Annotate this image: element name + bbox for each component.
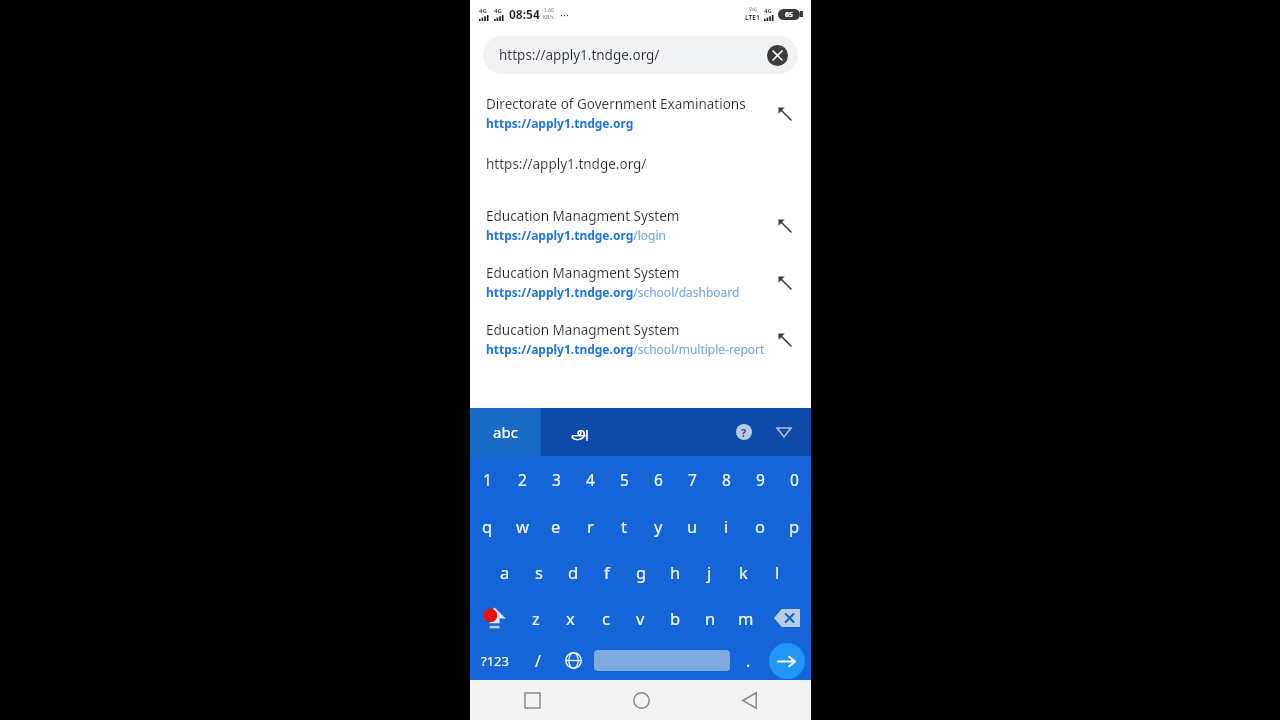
- staticText: 65: [785, 10, 794, 20]
- staticText: v: [636, 607, 645, 629]
- button[interactable]: w: [505, 503, 539, 549]
- staticText: 7: [688, 469, 697, 490]
- button[interactable]: Help: [729, 417, 759, 447]
- button[interactable]: z: [518, 594, 553, 641]
- button[interactable]: Education Managment System: [470, 198, 811, 252]
- button[interactable]: 1: [470, 456, 505, 503]
- staticText: m: [738, 607, 754, 629]
- button[interactable]: Clear: [767, 45, 788, 66]
- staticText: LTE1: [745, 13, 760, 22]
- button[interactable]: Back: [729, 680, 769, 720]
- staticText: n: [705, 607, 716, 629]
- button[interactable]: s: [522, 549, 556, 594]
- button[interactable]: abc: [470, 408, 541, 456]
- button[interactable]: https://apply1.tndge.org/: [470, 140, 811, 188]
- staticText: Vo): [749, 6, 757, 13]
- staticText: 4: [586, 469, 595, 490]
- button[interactable]: Backspace: [763, 594, 811, 641]
- button[interactable]: 4: [573, 456, 607, 503]
- button[interactable]: Edit suggestion: [767, 208, 801, 242]
- button[interactable]: v: [623, 594, 658, 641]
- staticText: abc: [493, 422, 518, 442]
- button[interactable]: 2: [505, 456, 539, 503]
- staticText: ···: [560, 7, 569, 22]
- button[interactable]: a: [487, 549, 522, 594]
- button[interactable]: Hide keyboard: [769, 417, 799, 447]
- staticText: 8: [722, 469, 731, 490]
- button[interactable]: Space: [594, 650, 730, 671]
- staticText: Education Managment System: [486, 264, 680, 282]
- button[interactable]: c: [588, 594, 623, 641]
- button[interactable]: Edit suggestion: [767, 322, 801, 356]
- button[interactable]: f: [590, 549, 624, 594]
- button[interactable]: 8: [709, 456, 743, 503]
- button[interactable]: y: [641, 503, 675, 549]
- staticText: https://apply1.tndge.org: [486, 115, 634, 131]
- button[interactable]: https://apply1.tndge.org/: [483, 36, 798, 74]
- button[interactable]: 6: [641, 456, 675, 503]
- button[interactable]: x: [553, 594, 588, 641]
- button[interactable]: u: [675, 503, 709, 549]
- staticText: t: [621, 515, 627, 537]
- staticText: r: [587, 515, 594, 537]
- button[interactable]: ?123: [470, 641, 520, 680]
- button[interactable]: n: [693, 594, 728, 641]
- button[interactable]: Edit suggestion: [767, 265, 801, 299]
- staticText: w: [516, 515, 529, 537]
- staticText: e: [551, 515, 561, 537]
- staticText: q: [482, 515, 493, 537]
- staticText: g: [636, 561, 647, 583]
- button[interactable]: 3: [539, 456, 573, 503]
- staticText: Directorate of Government Examinations: [486, 95, 746, 113]
- staticText: https://apply1.tndge.org/school/dashboar…: [486, 284, 740, 300]
- button[interactable]: d: [556, 549, 590, 594]
- staticText: 4G: [479, 7, 487, 15]
- button[interactable]: i: [709, 503, 743, 549]
- button[interactable]: Education Managment System: [470, 312, 811, 366]
- button[interactable]: 5: [607, 456, 641, 503]
- staticText: 4G: [764, 7, 772, 15]
- button[interactable]: Recent apps: [512, 680, 552, 720]
- button[interactable]: q: [470, 503, 505, 549]
- button[interactable]: k: [726, 549, 760, 594]
- button[interactable]: Go: [769, 643, 805, 679]
- staticText: 4G: [494, 7, 502, 15]
- staticText: Education Managment System: [486, 321, 680, 339]
- button[interactable]: 7: [675, 456, 709, 503]
- staticText: l: [775, 561, 780, 583]
- button[interactable]: அ: [541, 408, 616, 456]
- staticText: /: [535, 650, 541, 672]
- button[interactable]: Shift: [470, 594, 518, 641]
- button[interactable]: j: [692, 549, 726, 594]
- button[interactable]: m: [728, 594, 763, 641]
- staticText: https://apply1.tndge.org/login: [486, 227, 666, 243]
- button[interactable]: p: [777, 503, 811, 549]
- staticText: y: [654, 515, 663, 537]
- button[interactable]: h: [658, 549, 692, 594]
- button[interactable]: g: [624, 549, 658, 594]
- button[interactable]: .: [733, 641, 763, 680]
- staticText: ?: [741, 425, 747, 440]
- button[interactable]: e: [539, 503, 573, 549]
- button[interactable]: Edit suggestion: [767, 96, 801, 130]
- staticText: Education Managment System: [486, 207, 680, 225]
- button[interactable]: b: [658, 594, 693, 641]
- button[interactable]: r: [573, 503, 607, 549]
- staticText: k: [739, 561, 748, 583]
- staticText: 0: [790, 469, 799, 490]
- button[interactable]: Education Managment System: [470, 255, 811, 309]
- button[interactable]: o: [743, 503, 777, 549]
- button[interactable]: /: [520, 641, 555, 680]
- button[interactable]: Change language: [555, 641, 591, 680]
- button[interactable]: 0: [777, 456, 811, 503]
- button[interactable]: t: [607, 503, 641, 549]
- button[interactable]: l: [760, 549, 794, 594]
- staticText: https://apply1.tndge.org/school/multiple…: [486, 341, 765, 357]
- staticText: KB/s: [543, 14, 554, 21]
- button[interactable]: Directorate of Government Examinations: [470, 86, 811, 140]
- button[interactable]: Home: [621, 680, 661, 720]
- staticText: f: [604, 561, 610, 583]
- staticText: x: [566, 607, 575, 629]
- button[interactable]: 9: [743, 456, 777, 503]
- staticText: 1.60: [544, 7, 554, 14]
